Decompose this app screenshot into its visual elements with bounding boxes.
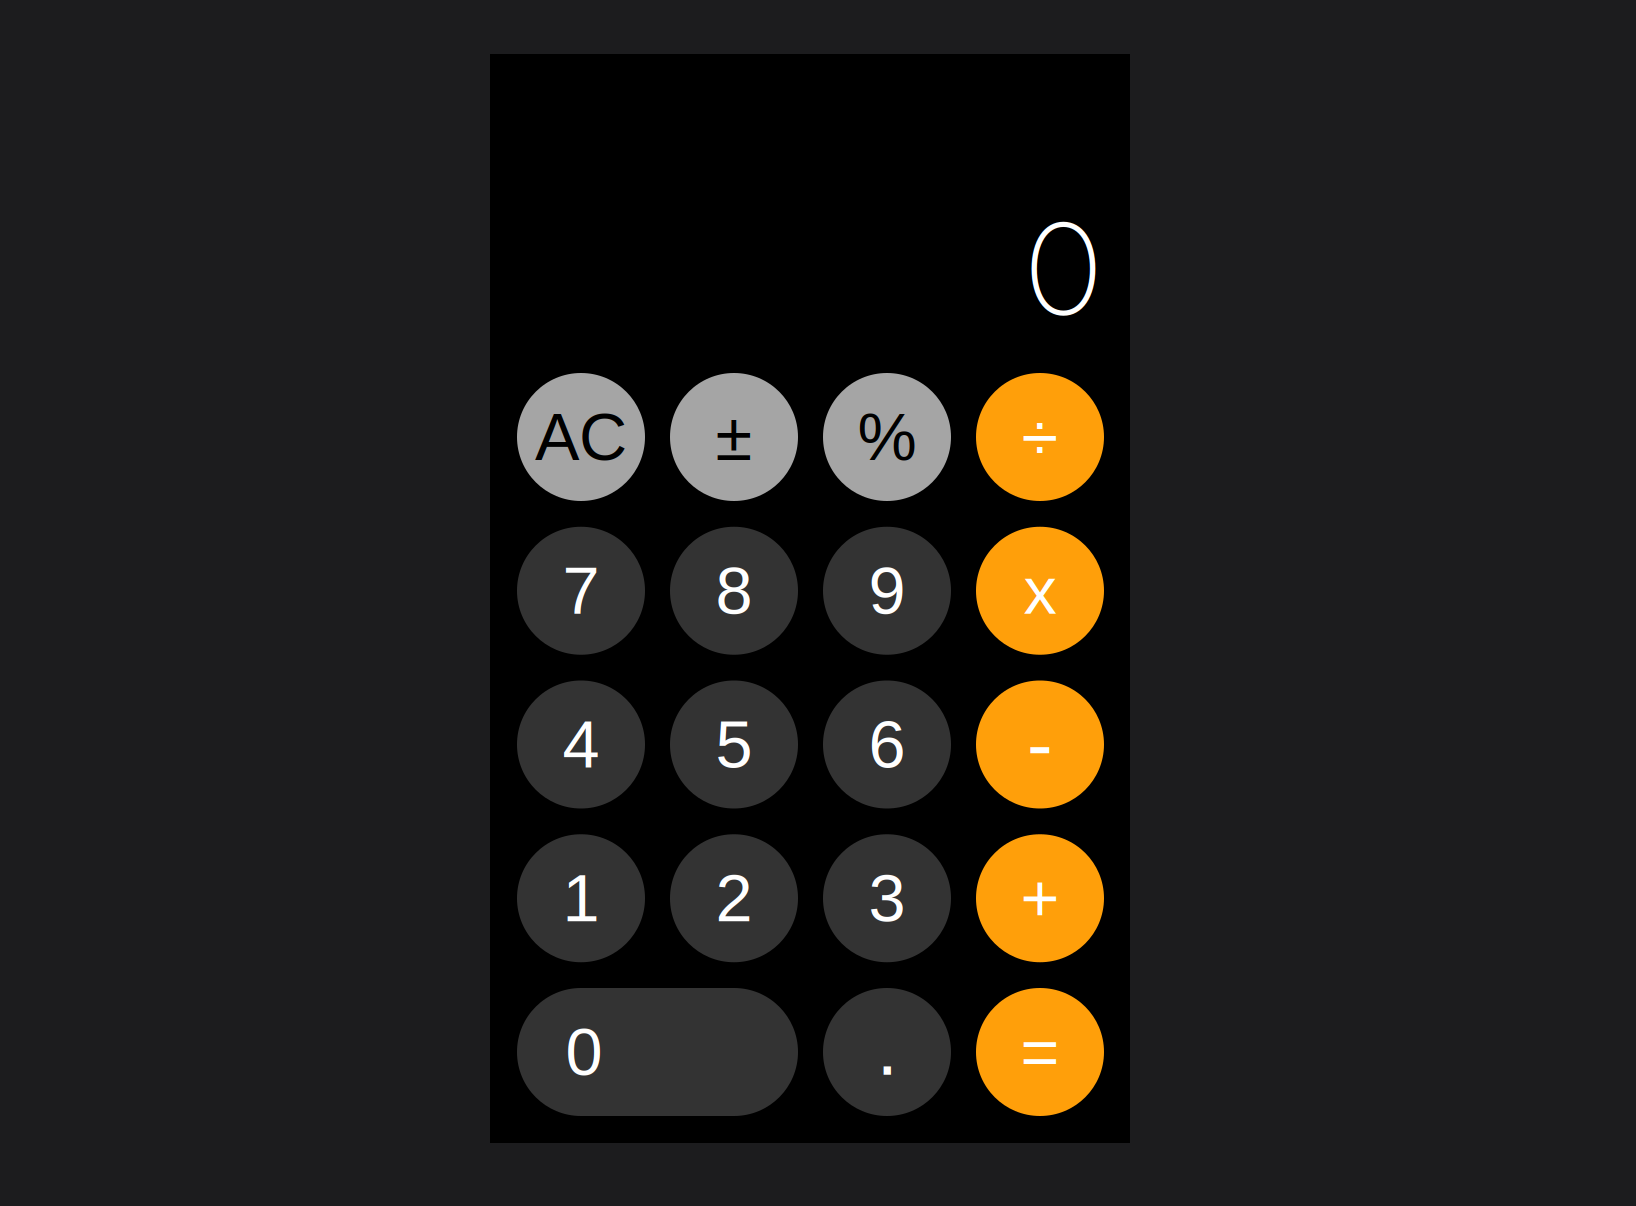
button[interactable]: Multiply — [976, 527, 1104, 655]
staticText: % — [857, 400, 916, 474]
staticText: - — [1027, 701, 1053, 788]
button[interactable]: Plus minus — [670, 373, 798, 501]
button[interactable]: Seven — [517, 527, 645, 655]
staticText: 0 — [1027, 192, 1100, 345]
staticText: ÷ — [1021, 400, 1058, 474]
button[interactable]: Percent — [823, 373, 951, 501]
staticText: 8 — [715, 553, 752, 628]
button[interactable]: Six — [823, 680, 951, 808]
button[interactable]: Subtract — [976, 680, 1104, 808]
staticText: x — [1023, 553, 1056, 628]
staticText: 0 — [565, 1015, 602, 1089]
staticText: AC — [535, 400, 627, 474]
button[interactable]: Three — [823, 834, 951, 962]
staticText: 2 — [715, 861, 752, 935]
staticText: 3 — [868, 861, 905, 935]
staticText: = — [1020, 1015, 1059, 1089]
staticText: 5 — [715, 707, 752, 782]
button[interactable]: Four — [517, 680, 645, 808]
button[interactable]: Equals — [976, 988, 1104, 1116]
button[interactable]: All clear — [517, 373, 645, 501]
staticText: 7 — [562, 553, 599, 628]
button[interactable]: Five — [670, 680, 798, 808]
button[interactable]: Decimal point — [823, 988, 951, 1116]
staticText: 1 — [562, 861, 599, 935]
button[interactable]: Two — [670, 834, 798, 962]
staticText: ± — [715, 400, 752, 474]
staticText: . — [876, 1005, 897, 1091]
button[interactable]: Divide — [976, 373, 1104, 501]
staticText: 4 — [562, 707, 599, 782]
staticText: + — [1020, 861, 1059, 935]
staticText: 9 — [868, 553, 905, 628]
button[interactable]: Nine — [823, 527, 951, 655]
button[interactable]: One — [517, 834, 645, 962]
button[interactable]: Eight — [670, 527, 798, 655]
staticText: 6 — [868, 707, 905, 782]
button[interactable]: Zero — [517, 988, 798, 1116]
button[interactable]: Add — [976, 834, 1104, 962]
